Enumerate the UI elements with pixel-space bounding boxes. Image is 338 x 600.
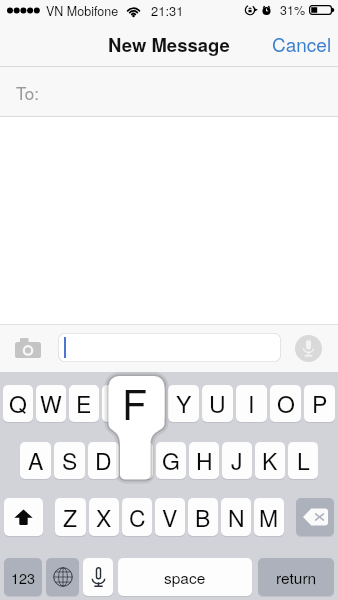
button[interactable]: X — [89, 498, 119, 536]
button[interactable]: Camera — [7, 330, 49, 366]
staticText: F — [122, 373, 148, 425]
button[interactable]: Z — [55, 498, 86, 536]
button[interactable]: V — [155, 498, 185, 536]
staticText: Z — [63, 501, 78, 534]
button[interactable]: 123 — [4, 558, 42, 596]
button[interactable]: E — [69, 385, 99, 422]
staticText: I — [248, 387, 255, 420]
button[interactable]: B — [188, 498, 218, 536]
button[interactable]: R — [102, 385, 132, 422]
staticText: Q — [9, 387, 27, 420]
button[interactable]: K — [255, 442, 285, 479]
staticText: C — [129, 501, 146, 534]
staticText: O — [277, 387, 295, 420]
staticText: K — [262, 444, 278, 477]
button[interactable]: Dictation — [83, 558, 113, 596]
staticText: VN Mobifone — [46, 2, 119, 20]
button[interactable]: T — [135, 385, 165, 422]
staticText: 21:31 — [151, 1, 184, 20]
staticText: U — [209, 387, 226, 420]
staticText: H — [196, 444, 213, 477]
button[interactable]: P — [304, 385, 335, 422]
staticText: 123 — [11, 567, 36, 588]
staticText: B — [195, 501, 211, 534]
staticText: G — [162, 444, 180, 477]
button[interactable]: C — [122, 498, 152, 536]
button[interactable]: S — [54, 442, 85, 479]
staticText: New Message — [108, 31, 230, 57]
button[interactable]: Q — [3, 385, 33, 422]
button[interactable]: Backspace — [296, 498, 334, 536]
button[interactable]: return — [258, 558, 334, 596]
staticText: T — [143, 387, 158, 420]
staticText: M — [259, 501, 279, 534]
button[interactable]: M — [254, 498, 284, 536]
staticText: R — [109, 387, 126, 420]
button[interactable]: Cancel — [264, 20, 338, 67]
staticText: A — [28, 444, 44, 477]
button[interactable]: H — [189, 442, 219, 479]
staticText: V — [162, 501, 178, 534]
staticText: E — [76, 387, 92, 420]
button[interactable]: U — [202, 385, 233, 422]
button[interactable]: A — [20, 442, 51, 479]
button[interactable]: Y — [168, 385, 199, 422]
button[interactable]: Shift — [4, 498, 43, 536]
button[interactable]: I — [236, 385, 267, 422]
button[interactable]: G — [156, 442, 186, 479]
staticText: S — [62, 444, 78, 477]
button[interactable] — [58, 333, 281, 362]
button[interactable]: Switch keyboard — [46, 558, 79, 596]
staticText: Cancel — [272, 30, 332, 57]
button[interactable] — [122, 442, 153, 479]
staticText: D — [95, 444, 112, 477]
staticText: P — [312, 387, 328, 420]
staticText: To: — [16, 80, 40, 104]
staticText: 31% — [280, 1, 306, 19]
button[interactable]: N — [221, 498, 251, 536]
button[interactable]: O — [270, 385, 301, 422]
staticText: W — [40, 387, 62, 420]
button[interactable]: L — [288, 442, 318, 479]
button[interactable]: space — [118, 558, 252, 596]
staticText: Y — [176, 387, 192, 420]
button[interactable]: D — [88, 442, 119, 479]
staticText: N — [228, 501, 245, 534]
button[interactable]: W — [36, 385, 66, 422]
staticText: J — [231, 444, 243, 477]
button[interactable]: J — [222, 442, 252, 479]
staticText: space — [164, 566, 206, 588]
button[interactable]: Dictate — [295, 335, 322, 362]
button[interactable]: To: — [0, 67, 338, 117]
staticText: L — [297, 444, 310, 477]
staticText: X — [96, 501, 112, 534]
staticText: return — [276, 566, 317, 588]
